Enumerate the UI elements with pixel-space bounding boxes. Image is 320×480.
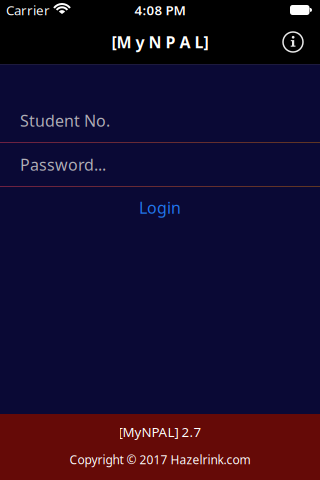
- staticText: [M y N P A L]: [111, 31, 208, 53]
- button[interactable]: Login: [139, 197, 181, 218]
- staticText: Carrier: [6, 1, 50, 19]
- staticText: Password...: [20, 154, 106, 175]
- staticText: Copyright © 2017 Hazelrink.com: [69, 452, 250, 468]
- button[interactable]: Student No.: [0, 99, 320, 142]
- button[interactable]: Password...: [0, 143, 320, 186]
- staticText: Student No.: [20, 110, 110, 131]
- staticText: Login: [139, 197, 181, 218]
- staticText: 4:08 PM: [134, 1, 185, 19]
- staticText: [MyNPAL] 2.7: [118, 423, 201, 441]
- button[interactable]: Info: [282, 31, 320, 53]
